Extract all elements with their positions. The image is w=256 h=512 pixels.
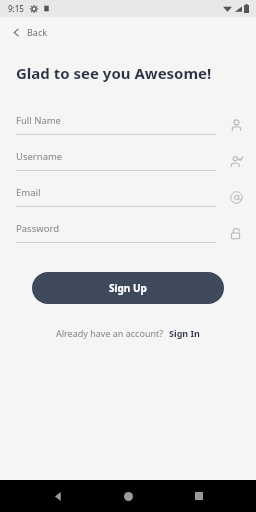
staticText: 9:15 xyxy=(8,3,24,14)
button[interactable]: Sign In xyxy=(169,327,200,339)
button[interactable]: Recent apps xyxy=(186,483,212,509)
staticText: Already have an account? xyxy=(56,327,164,339)
button[interactable]: Full Name xyxy=(0,114,256,135)
button[interactable]: Back xyxy=(45,483,71,509)
button[interactable]: Back xyxy=(8,23,52,41)
staticText: Sign In xyxy=(169,327,200,339)
staticText: Password xyxy=(16,222,59,235)
staticText: Sign Up xyxy=(109,281,147,295)
button[interactable]: Password xyxy=(0,222,256,243)
button[interactable]: Email xyxy=(0,186,256,207)
button[interactable]: Username xyxy=(0,150,256,171)
staticText: Email xyxy=(16,186,41,199)
button[interactable]: Home xyxy=(115,483,141,509)
staticText: Full Name xyxy=(16,114,61,127)
staticText: Back xyxy=(27,26,48,38)
staticText: Glad to see you Awesome! xyxy=(16,63,212,83)
staticText: Username xyxy=(16,150,63,163)
button[interactable]: Sign Up xyxy=(32,272,224,304)
